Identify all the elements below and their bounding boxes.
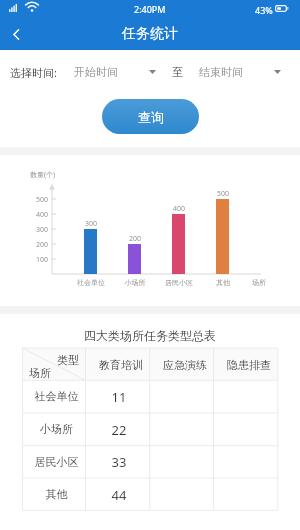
staticText: 其他	[25, 487, 88, 501]
staticText: 400	[18, 210, 48, 220]
staticText: 选择时间:	[10, 65, 57, 80]
button[interactable]: 结束时间	[199, 60, 285, 84]
staticText: 200	[121, 234, 149, 244]
staticText: 结束时间	[199, 65, 243, 79]
staticText: 开始时间	[74, 65, 118, 79]
staticText: 数量(个)	[30, 170, 56, 180]
staticText: 查询	[138, 109, 164, 125]
staticText: 400	[165, 204, 193, 214]
staticText: 200	[18, 240, 48, 250]
staticText: 其他	[203, 278, 243, 287]
staticText: 隐患排查	[217, 358, 281, 372]
staticText: 43%	[255, 4, 273, 16]
staticText: 至	[172, 65, 183, 79]
staticText: 300	[18, 225, 48, 235]
staticText: 22	[87, 421, 151, 439]
staticText: 类型	[57, 353, 79, 367]
staticText: 场所	[29, 366, 51, 380]
staticText: 居民小区	[25, 455, 88, 469]
staticText: 社会单位	[25, 389, 88, 403]
staticText: 应急演练	[153, 358, 217, 372]
staticText: 2:40PM	[134, 3, 166, 15]
staticText: 11	[87, 388, 151, 406]
staticText: 500	[209, 189, 237, 199]
button[interactable]: Back	[0, 18, 32, 50]
staticText: 小场所	[25, 422, 88, 436]
staticText: 33	[87, 453, 151, 471]
staticText: 社会单位	[71, 278, 111, 287]
staticText: 小场所	[115, 278, 155, 287]
staticText: 100	[18, 255, 48, 265]
staticText: 教育培训	[89, 358, 153, 372]
staticText: 四大类场所任务类型总表	[0, 328, 300, 343]
button[interactable]: 开始时间	[74, 60, 160, 84]
staticText: 300	[77, 219, 105, 229]
button[interactable]: 查询	[102, 99, 199, 134]
staticText: 44	[87, 486, 151, 504]
staticText: 场所	[239, 278, 279, 287]
staticText: 500	[18, 195, 48, 205]
staticText: 任务统计	[122, 25, 178, 43]
staticText: 居民小区	[159, 278, 199, 287]
